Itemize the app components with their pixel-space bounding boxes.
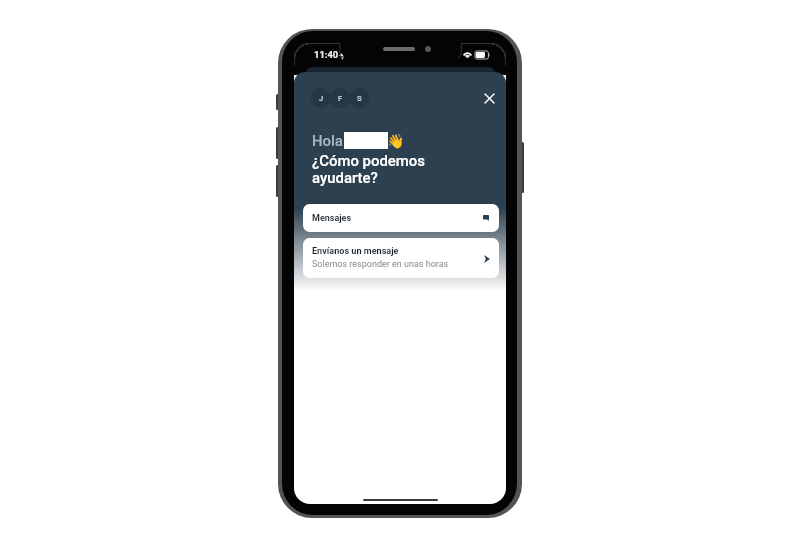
- button[interactable]: Cerrar: [479, 88, 499, 108]
- staticText: ¿Cómo podemos ayudarte?: [312, 152, 425, 186]
- staticText: 11:40: [314, 49, 339, 60]
- staticText: Mensajes: [312, 213, 352, 224]
- staticText: S: [357, 94, 362, 103]
- staticText: Hola: [312, 132, 343, 149]
- staticText: F: [338, 94, 343, 103]
- staticText: Solemos responder en unas horas: [312, 259, 449, 270]
- staticText: J: [319, 94, 324, 103]
- button[interactable]: Equipo de soporte: [311, 88, 371, 108]
- staticText: 👋: [387, 133, 405, 149]
- button[interactable]: Envíanos un mensaje: [303, 238, 499, 278]
- staticText: Envíanos un mensaje: [312, 246, 399, 257]
- button[interactable]: Mensajes: [303, 204, 499, 232]
